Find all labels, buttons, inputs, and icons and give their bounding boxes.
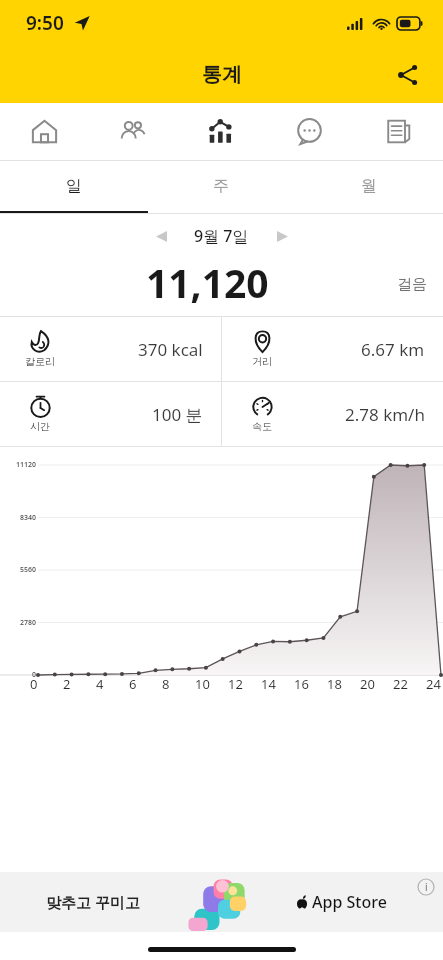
staticText: i	[425, 880, 428, 894]
staticText: 속도	[252, 420, 272, 433]
staticText: 시간	[30, 420, 50, 433]
staticText: 맞추고 꾸미고	[46, 892, 140, 912]
staticText: 18	[327, 675, 342, 693]
staticText: 100 분	[152, 403, 203, 426]
button[interactable]: Share	[385, 52, 431, 98]
staticText: 2	[63, 675, 71, 693]
button[interactable]: 칼로리	[0, 317, 221, 381]
staticText: 8340	[4, 513, 36, 523]
button[interactable]: 시간	[0, 382, 221, 446]
button[interactable]: Home	[0, 103, 88, 160]
staticText: 통계	[202, 62, 242, 87]
button[interactable]: Chat	[265, 103, 354, 160]
button[interactable]: News	[354, 103, 443, 160]
button[interactable]: 맞추고 꾸미고	[0, 872, 443, 932]
button[interactable]: Previous day	[142, 217, 180, 255]
staticText: 8	[162, 675, 170, 693]
staticText: 0	[4, 670, 36, 680]
button[interactable]: 주	[147, 161, 295, 211]
staticText: 4	[96, 675, 104, 693]
staticText: 걸음	[397, 275, 427, 294]
button[interactable]: 거리	[222, 317, 443, 381]
staticText: 5560	[4, 565, 36, 575]
staticText: 14	[261, 675, 276, 693]
button[interactable]: 월	[295, 161, 443, 211]
button[interactable]: 속도	[222, 382, 443, 446]
button[interactable]: Next day	[263, 217, 301, 255]
button[interactable]: Friends	[88, 103, 176, 160]
staticText: 16	[294, 675, 309, 693]
button[interactable]: Stats	[176, 103, 265, 160]
staticText: 370 kcal	[138, 338, 203, 361]
staticText: 20	[360, 675, 375, 693]
staticText: 주	[213, 176, 229, 196]
staticText: 2.78 km/h	[345, 403, 425, 426]
button[interactable]: Ad info	[417, 878, 435, 896]
staticText: 11,120	[146, 256, 269, 308]
staticText: 6.67 km	[361, 338, 425, 361]
staticText: 일	[66, 176, 82, 196]
staticText: 11120	[4, 460, 36, 470]
staticText: 월	[361, 176, 377, 196]
staticText: 12	[228, 675, 243, 693]
button[interactable]: 일	[0, 161, 147, 211]
staticText: 9월 7일	[194, 225, 249, 247]
staticText: 칼로리	[25, 355, 55, 368]
staticText: 6	[129, 675, 137, 693]
staticText: 0	[30, 675, 38, 693]
staticText: App Store	[312, 891, 387, 913]
staticText: 거리	[252, 355, 272, 368]
staticText: 24	[426, 675, 441, 693]
staticText: 9:50	[26, 10, 64, 36]
staticText: 10	[195, 675, 210, 693]
staticText: 22	[393, 675, 408, 693]
staticText: 2780	[4, 618, 36, 628]
